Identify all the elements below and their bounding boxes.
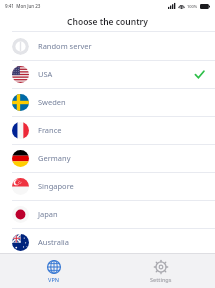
button[interactable]: Singapore <box>0 172 215 200</box>
staticText: Random server <box>38 41 92 51</box>
staticText: Japan <box>38 209 58 219</box>
button[interactable]: Canada <box>0 256 215 263</box>
button[interactable]: USA <box>0 60 215 88</box>
button[interactable]: Germany <box>0 144 215 172</box>
button[interactable]: Australia <box>0 228 215 256</box>
staticText: Sweden <box>38 97 66 107</box>
staticText: Singapore <box>38 181 74 191</box>
button[interactable]: Settings <box>107 254 215 288</box>
button[interactable]: Sweden <box>0 88 215 116</box>
staticText: Canada <box>38 256 65 263</box>
staticText: Settings <box>150 276 172 283</box>
button[interactable]: Japan <box>0 200 215 228</box>
staticText: Germany <box>38 153 71 163</box>
staticText: USA <box>38 69 53 79</box>
staticText: 100% <box>187 4 198 9</box>
button[interactable]: Random server <box>0 32 215 60</box>
button[interactable]: France <box>0 116 215 144</box>
staticText: Choose the country <box>67 16 148 28</box>
staticText: 9:41 Mon Jun 23 <box>5 3 41 9</box>
button[interactable]: VPN <box>0 254 107 288</box>
staticText: Australia <box>38 237 69 247</box>
staticText: VPN <box>48 276 60 283</box>
staticText: France <box>38 125 62 135</box>
